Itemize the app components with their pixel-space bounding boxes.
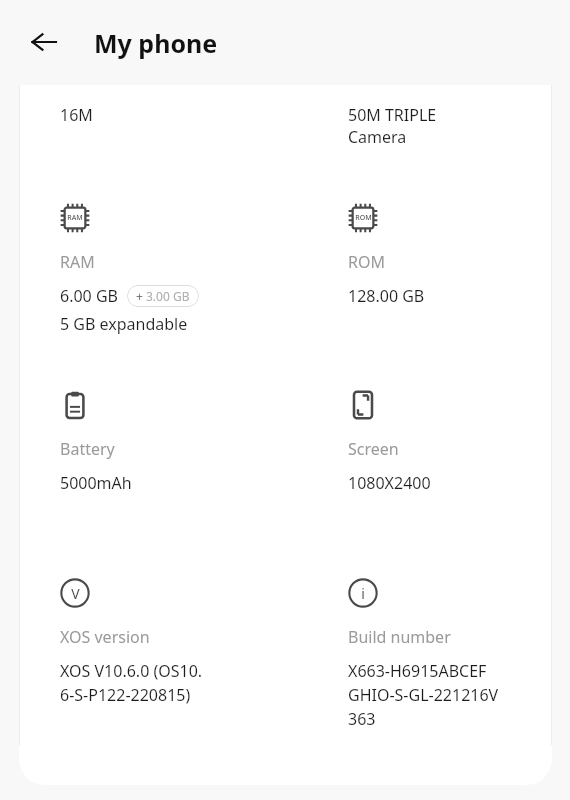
button[interactable]: RAM	[60, 203, 270, 335]
button[interactable]: Screen	[348, 390, 552, 494]
button[interactable]: ROM	[348, 203, 552, 307]
button[interactable]: Back	[22, 20, 66, 64]
staticText: 128.00 GB	[348, 285, 425, 307]
staticText: ROM	[348, 251, 385, 273]
staticText: i	[361, 584, 365, 603]
staticText: XOS version	[60, 626, 150, 648]
staticText: Build number	[348, 626, 451, 648]
staticText: 16M	[60, 104, 93, 126]
staticText: 5000mAh	[60, 472, 132, 494]
staticText: 1080X2400	[348, 472, 431, 494]
staticText: My phone	[94, 26, 218, 60]
staticText: 3.00 GB	[146, 288, 190, 304]
staticText: 6.00 GB	[60, 285, 118, 307]
button[interactable]: V	[60, 578, 270, 706]
button[interactable]: Battery	[60, 390, 270, 494]
staticText: Battery	[60, 438, 115, 460]
staticText: Screen	[348, 438, 399, 460]
staticText: XOS V10.6.0 (OS10. 6-S-P122-220815)	[60, 660, 203, 706]
button[interactable]: i	[348, 578, 552, 730]
staticText: ROM	[355, 213, 372, 223]
staticText: 50M TRIPLE Camera	[348, 104, 437, 148]
staticText: 5 GB expandable	[60, 313, 188, 335]
staticText: X663-H6915ABCEF GHIO-S-GL-221216V 363	[348, 660, 499, 730]
staticText: RAM	[67, 213, 83, 223]
staticText: V	[71, 584, 80, 603]
staticText: +	[136, 288, 146, 304]
staticText: RAM	[60, 251, 95, 273]
